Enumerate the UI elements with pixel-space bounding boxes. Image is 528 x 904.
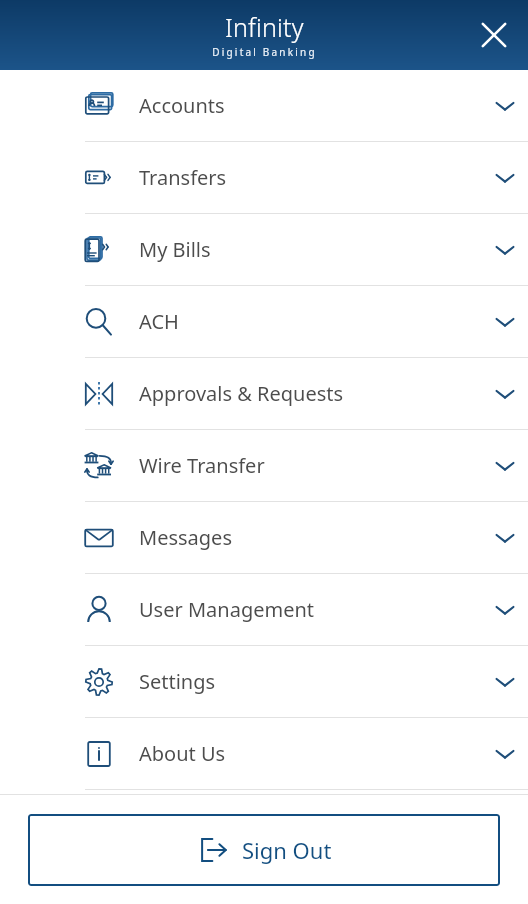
button[interactable]: About Us xyxy=(0,718,528,790)
button[interactable]: Wire Transfer xyxy=(0,430,528,502)
staticText: Sign Out xyxy=(242,835,332,865)
staticText: Settings xyxy=(139,668,216,695)
staticText: Accounts xyxy=(139,92,225,119)
staticText: User Management xyxy=(139,596,315,623)
staticText: My Bills xyxy=(139,236,211,263)
button[interactable]: ACH xyxy=(0,286,528,358)
staticText: Infinity xyxy=(225,10,304,44)
staticText: ACH xyxy=(139,308,179,335)
button[interactable]: Approvals & Requests xyxy=(0,358,528,430)
staticText: Messages xyxy=(139,524,232,551)
button[interactable]: Sign Out xyxy=(28,814,500,886)
button[interactable]: User Management xyxy=(0,574,528,646)
staticText: Approvals & Requests xyxy=(139,380,344,407)
button[interactable]: Accounts xyxy=(0,70,528,142)
button[interactable]: Transfers xyxy=(0,142,528,214)
button[interactable]: Settings xyxy=(0,646,528,718)
button[interactable]: My Bills xyxy=(0,214,528,286)
staticText: About Us xyxy=(139,740,226,767)
staticText: Digital Banking xyxy=(212,45,317,59)
staticText: Wire Transfer xyxy=(139,452,265,479)
staticText: Transfers xyxy=(139,164,227,191)
button[interactable]: Messages xyxy=(0,502,528,574)
button[interactable]: Close xyxy=(470,11,518,59)
